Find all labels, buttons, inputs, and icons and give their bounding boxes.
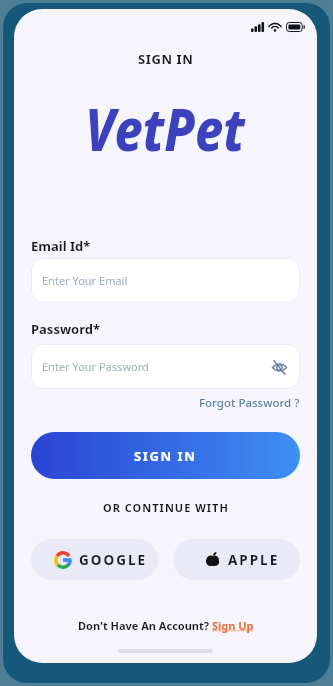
button[interactable]: SIGN IN: [31, 432, 300, 479]
staticText: APPLE: [228, 551, 280, 569]
staticText: Enter Your Password: [42, 359, 149, 374]
staticText: Password*: [31, 320, 100, 338]
button[interactable]: [269, 357, 289, 377]
button[interactable]: Enter Your Email: [31, 258, 300, 303]
staticText: Email Id*: [31, 237, 91, 255]
button[interactable]: APPLE: [173, 539, 300, 580]
staticText: Don't Have An Account? Sign Up: [78, 618, 254, 633]
button[interactable]: GOOGLE: [31, 539, 158, 580]
button[interactable]: Forgot Password ?: [199, 395, 300, 411]
staticText: Enter Your Email: [42, 273, 128, 288]
staticText: GOOGLE: [79, 551, 148, 569]
button[interactable]: Enter Your Password: [31, 344, 300, 389]
staticText: SIGN IN: [138, 50, 194, 68]
staticText: VetPet: [85, 87, 246, 168]
staticText: OR CONTINUE WITH: [103, 500, 229, 515]
button[interactable]: Don't Have An Account? Sign Up: [14, 618, 317, 633]
staticText: SIGN IN: [134, 447, 197, 465]
